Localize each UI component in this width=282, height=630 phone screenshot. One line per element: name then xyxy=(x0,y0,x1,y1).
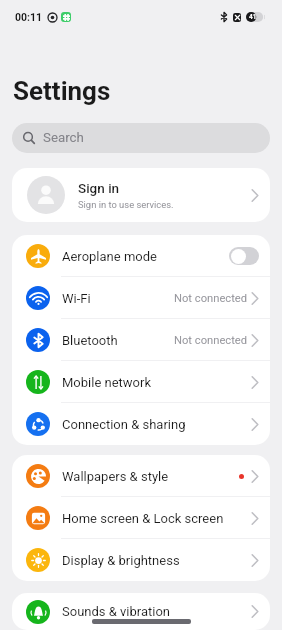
staticText: Display & brightness xyxy=(62,553,180,568)
staticText: Search xyxy=(43,130,84,146)
staticText: Settings xyxy=(13,76,111,106)
staticText: Wi-Fi xyxy=(62,291,91,306)
staticText: Mobile network xyxy=(62,375,152,390)
staticText: Sounds & vibration xyxy=(62,604,171,619)
button[interactable]: Connection & sharing xyxy=(12,403,270,445)
staticText: Bluetooth xyxy=(62,333,118,348)
staticText: 41 xyxy=(249,13,257,21)
button[interactable]: Aeroplane mode xyxy=(12,235,270,277)
staticText: Sign in to use services. xyxy=(78,199,174,210)
staticText: Not connected xyxy=(174,292,248,305)
staticText: Wallpapers & style xyxy=(62,469,169,484)
button[interactable]: Sign in xyxy=(12,168,270,222)
button[interactable]: Wi-Fi xyxy=(12,277,270,319)
button[interactable]: Display & brightness xyxy=(12,539,270,581)
button[interactable]: Search xyxy=(12,123,270,153)
staticText: Connection & sharing xyxy=(62,417,186,432)
button[interactable]: Sounds & vibration xyxy=(12,593,270,630)
button[interactable]: Bluetooth xyxy=(12,319,270,361)
staticText: 00:11 xyxy=(15,11,43,23)
button[interactable]: Aeroplane mode toggle xyxy=(229,247,259,265)
staticText: Aeroplane mode xyxy=(62,249,157,264)
button[interactable]: Home screen & Lock screen xyxy=(12,497,270,539)
button[interactable]: Mobile network xyxy=(12,361,270,403)
staticText: Not connected xyxy=(174,334,248,347)
staticText: Sign in xyxy=(78,180,120,196)
staticText: Home screen & Lock screen xyxy=(62,511,224,526)
button[interactable]: Wallpapers & style xyxy=(12,455,270,497)
